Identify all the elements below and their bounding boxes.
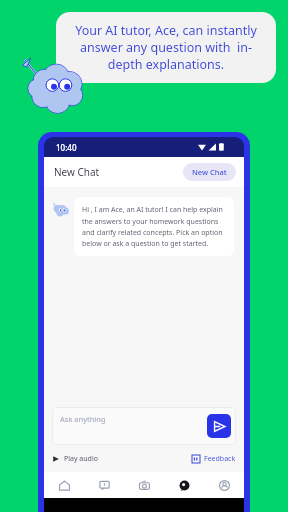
button[interactable]: Ace	[164, 472, 204, 498]
button[interactable]: Ask anything	[52, 407, 236, 445]
button[interactable]: Questions	[84, 472, 124, 498]
button[interactable]: Hi , I am Ace, an AI tutor! I can help e…	[74, 197, 234, 256]
button[interactable]: Feedback	[192, 452, 236, 466]
button[interactable]: Play audio	[52, 452, 98, 466]
staticText: New Chat	[192, 167, 227, 177]
staticText: Play audio	[64, 454, 98, 464]
button[interactable]: Home	[44, 472, 84, 498]
button[interactable]: Send	[207, 414, 231, 438]
staticText: Hi , I am Ace, an AI tutor! I can help e…	[82, 205, 226, 248]
staticText: New Chat	[54, 165, 100, 179]
staticText: Feedback	[204, 454, 236, 464]
button[interactable]: New Chat	[183, 163, 236, 181]
button[interactable]: Camera	[124, 472, 164, 498]
staticText: Ask anything	[60, 414, 106, 424]
staticText: 10:40	[56, 142, 77, 153]
button[interactable]: Profile	[204, 472, 244, 498]
staticText: Your AI tutor, Ace, can instantly answer…	[66, 22, 266, 73]
